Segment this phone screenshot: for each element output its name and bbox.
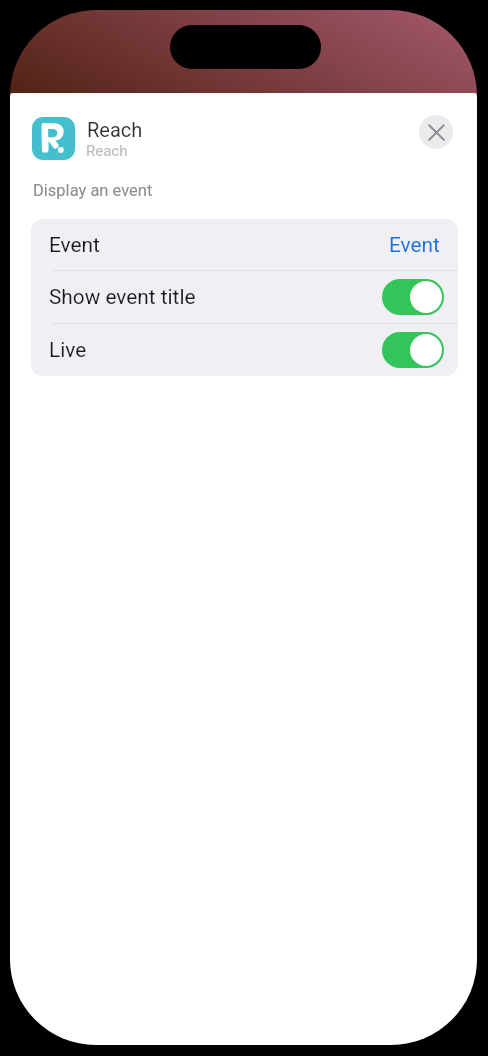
button[interactable]: Live — [31, 324, 458, 376]
staticText: Live — [49, 338, 87, 362]
button[interactable]: Toggle — [382, 332, 444, 368]
button[interactable]: Toggle — [382, 279, 444, 315]
staticText: Reach — [87, 118, 143, 141]
staticText: Reach — [86, 142, 128, 160]
staticText: Event — [389, 233, 440, 257]
button[interactable]: Show event title — [31, 271, 458, 323]
button[interactable]: Event — [31, 219, 458, 270]
staticText: Display an event — [33, 181, 153, 200]
staticText: Show event title — [49, 285, 196, 309]
button[interactable]: Close — [419, 115, 453, 149]
staticText: Event — [49, 233, 100, 257]
